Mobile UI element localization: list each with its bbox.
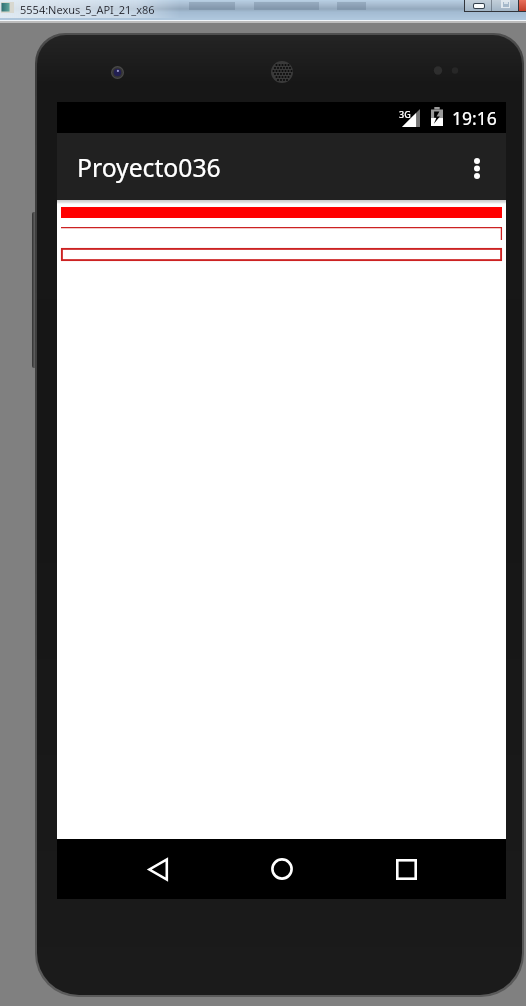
button[interactable]: Back: [118, 839, 198, 899]
staticText: 19:16: [452, 106, 497, 130]
staticText: Proyecto036: [77, 151, 221, 185]
staticText: 3G: [399, 108, 411, 120]
button[interactable]: Close: [519, 0, 526, 12]
button[interactable]: Home: [242, 839, 322, 899]
button[interactable]: Maximize: [492, 0, 519, 12]
button[interactable]: Recent apps: [366, 839, 446, 899]
staticText: 5554:Nexus_5_API_21_x86: [20, 2, 155, 17]
button[interactable]: More options: [458, 133, 506, 200]
button[interactable]: Minimize: [465, 0, 492, 12]
